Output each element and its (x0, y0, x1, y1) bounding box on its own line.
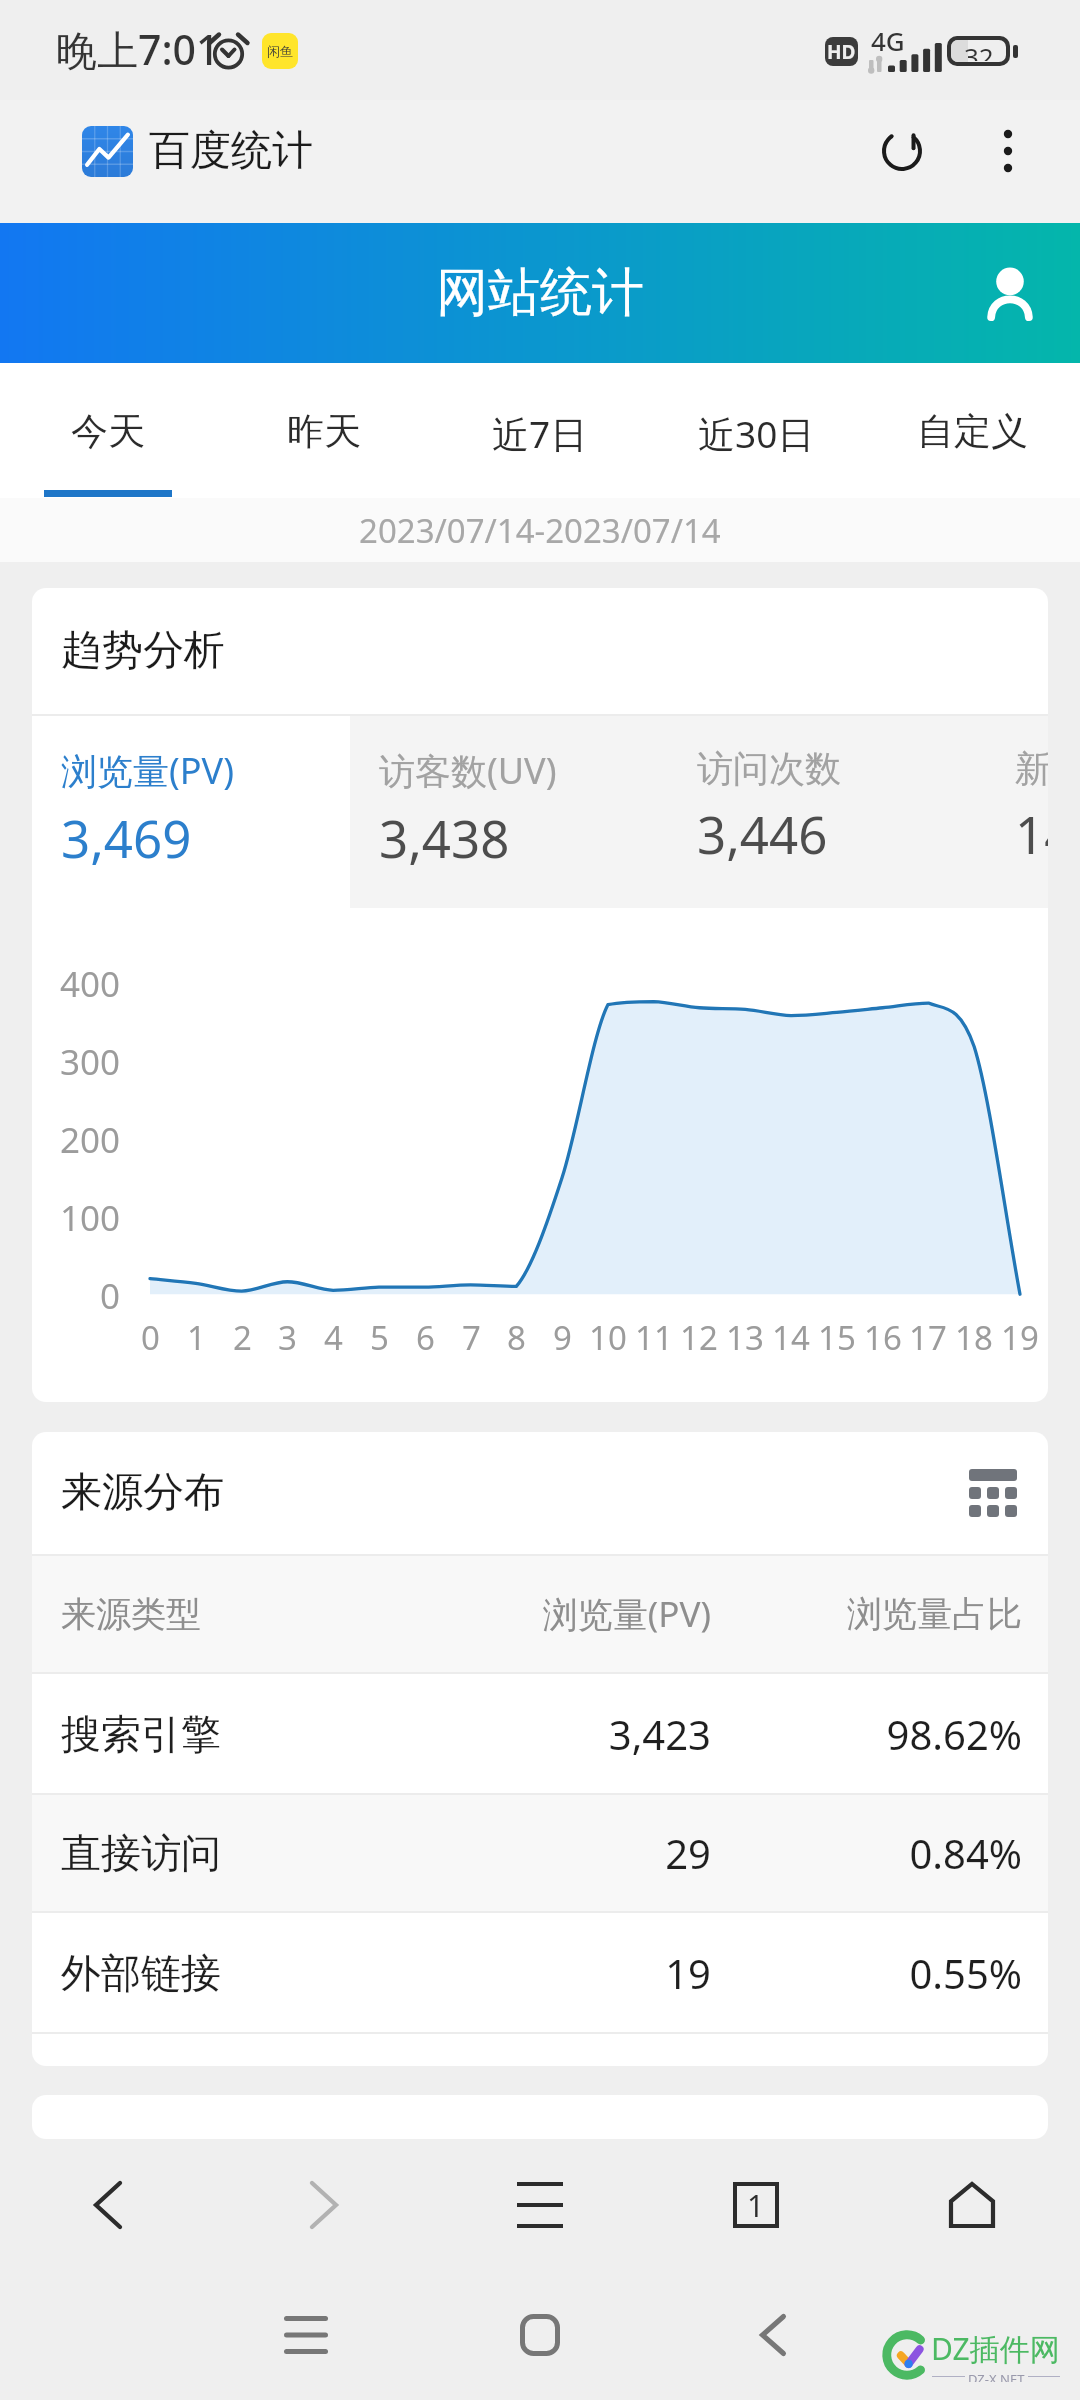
button[interactable]: 浏览量(PV) (32, 716, 350, 908)
staticText: 19 (371, 1946, 711, 2000)
staticText: 3 (278, 1315, 297, 1360)
staticText: 3,438 (379, 803, 510, 872)
button[interactable]: 来源类型 (32, 1556, 1048, 1672)
button[interactable]: 访问次数 (668, 716, 986, 908)
button[interactable]: 今天 (0, 363, 216, 498)
staticText: 来源类型 (61, 1592, 371, 1636)
staticText: 百度统计 (149, 125, 313, 177)
staticText: 直接访问 (61, 1828, 371, 1878)
staticText: 19 (1001, 1315, 1039, 1360)
button[interactable]: 近30日 (648, 363, 864, 498)
button[interactable]: 直接访问 (32, 1795, 1048, 1911)
staticText: 1 (747, 2185, 765, 2226)
staticText: 7 (462, 1315, 481, 1360)
staticText: 外部链接 (61, 1948, 371, 1998)
button[interactable]: Table view (945, 1445, 1041, 1541)
button[interactable]: Tabs (648, 2139, 864, 2270)
staticText: 来源分布 (61, 1467, 225, 1519)
staticText: 浏览量占比 (711, 1592, 1022, 1636)
staticText: 11 (635, 1315, 673, 1360)
staticText: 18 (955, 1315, 993, 1360)
staticText: 搜索引擎 (61, 1709, 371, 1759)
staticText: 10 (589, 1315, 627, 1360)
staticText: 新访客数 (1015, 746, 1048, 791)
staticText: 300 (59, 1038, 120, 1086)
staticText: 32 (964, 40, 994, 61)
staticText: 14 (1015, 799, 1048, 868)
staticText: 3,446 (697, 799, 828, 868)
button[interactable]: 近7日 (432, 363, 648, 498)
staticText: DZ插件网 (931, 2328, 1060, 2369)
staticText: 趋势分析 (61, 625, 225, 677)
button[interactable]: Home (482, 2277, 598, 2393)
staticText: 98.62% (711, 1707, 1022, 1761)
staticText: 1 (187, 1315, 206, 1360)
staticText: 8 (507, 1315, 526, 1360)
button[interactable]: More options (958, 101, 1058, 201)
staticText: 访问次数 (697, 746, 841, 791)
staticText: 自定义 (917, 408, 1028, 455)
staticText: 12 (680, 1315, 718, 1360)
staticText: 3,469 (61, 803, 192, 872)
staticText: 近30日 (698, 408, 815, 459)
staticText: 2023/07/14-2023/07/14 (359, 508, 721, 553)
staticText: 5 (370, 1315, 389, 1360)
staticText: 浏览量(PV) (371, 1590, 711, 1638)
staticText: 浏览量(PV) (61, 746, 234, 795)
staticText: 16 (864, 1315, 902, 1360)
staticText: 9 (553, 1315, 572, 1360)
staticText: 400 (59, 960, 120, 1008)
staticText: 0.84% (711, 1826, 1022, 1880)
staticText: 访客数(UV) (379, 746, 557, 795)
button[interactable]: Back (715, 2277, 831, 2393)
button[interactable]: 昨天 (216, 363, 432, 498)
staticText: 近7日 (492, 408, 588, 459)
button[interactable]: 搜索引擎 (32, 1674, 1048, 1793)
staticText: 14 (772, 1315, 810, 1360)
staticText: 13 (726, 1315, 764, 1360)
button[interactable]: 访客数(UV) (350, 716, 668, 908)
staticText: 6 (416, 1315, 435, 1360)
staticText: 4G (871, 23, 905, 58)
staticText: 晚上7:01 (56, 21, 220, 77)
staticText: 15 (818, 1315, 856, 1360)
button[interactable]: Home (864, 2139, 1080, 2270)
staticText: 0 (141, 1315, 160, 1360)
staticText: DZ-X.NET (968, 2370, 1025, 2382)
staticText: 200 (59, 1116, 120, 1164)
button[interactable]: Menu (432, 2139, 648, 2270)
button[interactable]: Refresh (846, 100, 958, 202)
staticText: 网站统计 (436, 260, 644, 326)
staticText: HD (827, 39, 856, 65)
staticText: 2 (233, 1315, 252, 1360)
staticText: 闲鱼 (267, 43, 293, 59)
button[interactable]: 自定义 (864, 363, 1080, 498)
staticText: 3,423 (371, 1707, 711, 1761)
button[interactable]: Back (0, 2139, 216, 2270)
staticText: 昨天 (287, 408, 361, 455)
staticText: 0 (99, 1272, 120, 1320)
button[interactable]: Forward (216, 2139, 432, 2270)
button[interactable]: 外部链接 (32, 1913, 1048, 2032)
button[interactable]: 新访客数 (986, 716, 1048, 908)
staticText: 4 (324, 1315, 343, 1360)
staticText: 17 (909, 1315, 947, 1360)
staticText: 100 (59, 1194, 120, 1242)
button[interactable]: Account (955, 238, 1065, 348)
staticText: 29 (371, 1826, 711, 1880)
staticText: 今天 (71, 408, 145, 455)
staticText: 0.55% (711, 1946, 1022, 2000)
button[interactable]: Recent apps (248, 2277, 364, 2393)
